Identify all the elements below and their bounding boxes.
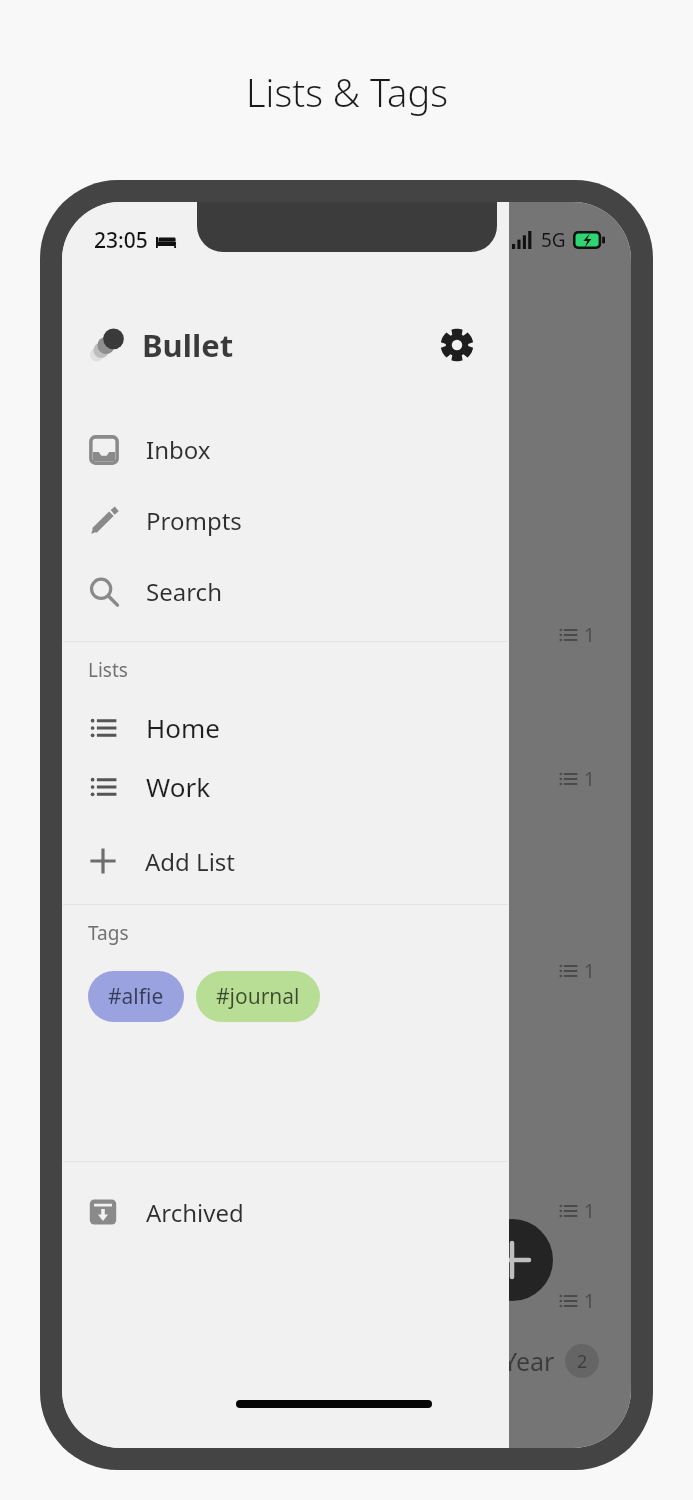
button[interactable]: Prompts bbox=[62, 485, 509, 556]
button[interactable]: Home bbox=[62, 698, 509, 757]
staticText: Home bbox=[146, 710, 220, 745]
staticText: Prompts bbox=[146, 504, 242, 537]
staticText: Tags bbox=[88, 920, 129, 946]
staticText: 1 bbox=[584, 1198, 595, 1224]
staticText: Inbox bbox=[146, 433, 211, 466]
button[interactable]: Archived bbox=[62, 1176, 509, 1248]
staticText: Year bbox=[503, 1344, 555, 1378]
staticText: #alfie bbox=[108, 982, 164, 1011]
staticText: 23:05 bbox=[94, 226, 148, 255]
button[interactable]: Inbox bbox=[62, 414, 509, 485]
button[interactable]: #journal bbox=[196, 971, 320, 1022]
staticText: 1 bbox=[584, 766, 595, 792]
staticText: 1 bbox=[584, 622, 595, 648]
staticText: Bullet bbox=[142, 324, 234, 366]
staticText: Search bbox=[146, 575, 222, 608]
button[interactable]: Search bbox=[62, 556, 509, 627]
staticText: Add List bbox=[145, 845, 236, 878]
button[interactable]: #alfie bbox=[88, 971, 184, 1022]
staticText: 5G bbox=[541, 227, 566, 253]
staticText: 1 bbox=[584, 958, 595, 984]
staticText: Lists & Tags bbox=[246, 66, 448, 118]
button[interactable]: Add entry bbox=[471, 1219, 553, 1301]
staticText: 1 bbox=[584, 1288, 595, 1314]
staticText: 2 bbox=[577, 1349, 588, 1374]
button[interactable]: Work bbox=[62, 757, 509, 816]
staticText: Work bbox=[146, 769, 211, 804]
staticText: Archived bbox=[146, 1196, 244, 1229]
button[interactable]: Add List bbox=[62, 830, 509, 892]
staticText: Lists bbox=[88, 657, 128, 683]
button[interactable]: Settings bbox=[431, 319, 483, 371]
staticText: #journal bbox=[216, 982, 300, 1011]
